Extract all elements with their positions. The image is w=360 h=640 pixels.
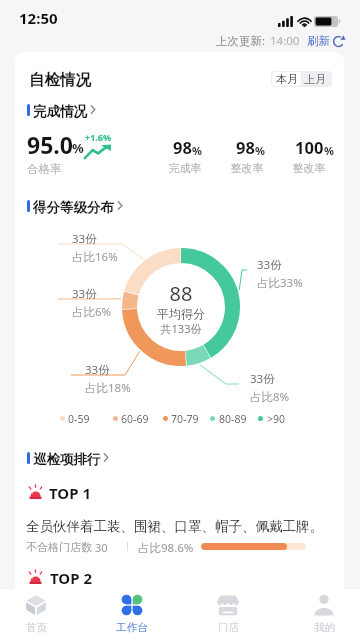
staticText: 占比98.6% <box>138 540 194 556</box>
staticText: % <box>324 143 334 158</box>
staticText: 100 <box>295 136 324 158</box>
staticText: 33份 <box>257 257 282 273</box>
button[interactable]: 首页 <box>0 589 76 640</box>
staticText: 平均得分 <box>141 306 221 321</box>
staticText: 98 <box>236 136 255 158</box>
staticText: % <box>72 139 84 157</box>
staticText: 33份 <box>85 362 110 378</box>
staticText: % <box>192 143 202 158</box>
staticText: TOP 1 <box>49 483 92 503</box>
staticText: 得分等级分布 <box>33 199 114 216</box>
staticText: 占比16% <box>72 249 118 265</box>
button[interactable]: 我的 <box>284 589 360 640</box>
staticText: 12:50 <box>19 8 58 28</box>
button[interactable]: 完成情况 <box>23 100 77 120</box>
staticText: 占比18% <box>85 380 131 396</box>
staticText: 完成率 <box>145 161 225 175</box>
staticText: 上月 <box>304 72 326 86</box>
staticText: KK下载 <box>240 587 344 629</box>
staticText: 首页 <box>26 621 47 634</box>
button[interactable]: 门店 <box>188 589 268 640</box>
staticText: www.kkx.net <box>246 618 332 636</box>
staticText: 刷新 <box>307 34 330 48</box>
staticText: 占比33% <box>257 275 303 291</box>
staticText: 占比6% <box>72 304 112 320</box>
staticText: 全员伙伴着工装、围裙、口罩、帽子、佩戴工牌。 <box>26 518 323 535</box>
staticText: 整改率 <box>269 161 344 175</box>
staticText: 80-89 <box>219 412 247 426</box>
staticText: 合格率 <box>27 162 62 176</box>
staticText: % <box>255 143 265 158</box>
staticText: 共133份 <box>141 321 221 336</box>
staticText: 95.0 <box>27 129 73 160</box>
button[interactable]: TOP 1 <box>15 480 344 546</box>
button[interactable]: TOP 2 <box>15 564 344 589</box>
button[interactable]: 刷新 <box>307 34 345 48</box>
staticText: 60-69 <box>121 412 149 426</box>
staticText: 33份 <box>250 371 275 387</box>
button[interactable]: 上月 <box>300 71 330 87</box>
staticText: 工作台 <box>116 621 148 634</box>
staticText: 14:00 <box>270 33 300 49</box>
staticText: 33份 <box>72 286 97 302</box>
staticText: 我的 <box>314 621 335 634</box>
staticText: 0-59 <box>68 412 90 426</box>
staticText: 不合格门店数 <box>26 540 92 554</box>
staticText: +1.6% <box>85 131 112 143</box>
staticText: 98 <box>173 136 192 158</box>
button[interactable]: 工作台 <box>92 589 172 640</box>
other: Refresh <box>332 35 345 48</box>
staticText: 70-79 <box>171 412 199 426</box>
staticText: TOP 2 <box>50 568 93 588</box>
button[interactable]: 得分等级分布 <box>23 196 104 216</box>
button[interactable]: 巡检项排行 <box>23 448 91 468</box>
staticText: 30 <box>95 540 108 555</box>
button[interactable]: 本月 <box>272 72 301 86</box>
staticText: 自检情况 <box>29 70 91 90</box>
staticText: 上次更新: <box>216 33 266 49</box>
staticText: 完成情况 <box>33 103 87 120</box>
staticText: 整改率 <box>207 161 287 175</box>
staticText: 占比8% <box>250 389 290 405</box>
staticText: 33份 <box>72 231 97 247</box>
staticText: >90 <box>267 412 286 426</box>
staticText: 门店 <box>218 621 239 634</box>
staticText: 巡检项排行 <box>33 451 101 468</box>
staticText: 本月 <box>276 72 298 86</box>
staticText: 88 <box>141 280 221 307</box>
